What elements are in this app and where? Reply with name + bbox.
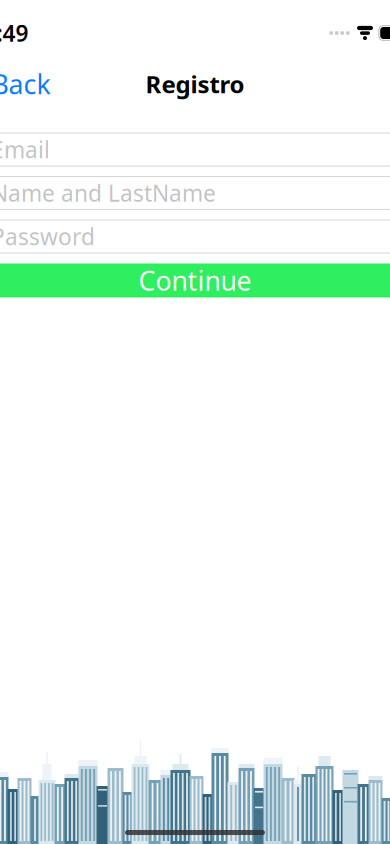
- button[interactable]: Email: [0, 133, 390, 166]
- button[interactable]: Back: [0, 60, 50, 108]
- button[interactable]: Password: [0, 220, 390, 253]
- staticText: Name and LastName: [0, 178, 216, 208]
- staticText: Back: [0, 66, 50, 102]
- staticText: Password: [0, 221, 95, 251]
- button[interactable]: Continue: [0, 263, 390, 297]
- staticText: Email: [0, 134, 50, 164]
- staticText: 6:49: [0, 18, 28, 48]
- staticText: Continue: [138, 263, 251, 298]
- button[interactable]: Name and LastName: [0, 176, 390, 209]
- staticText: Registro: [145, 68, 244, 100]
